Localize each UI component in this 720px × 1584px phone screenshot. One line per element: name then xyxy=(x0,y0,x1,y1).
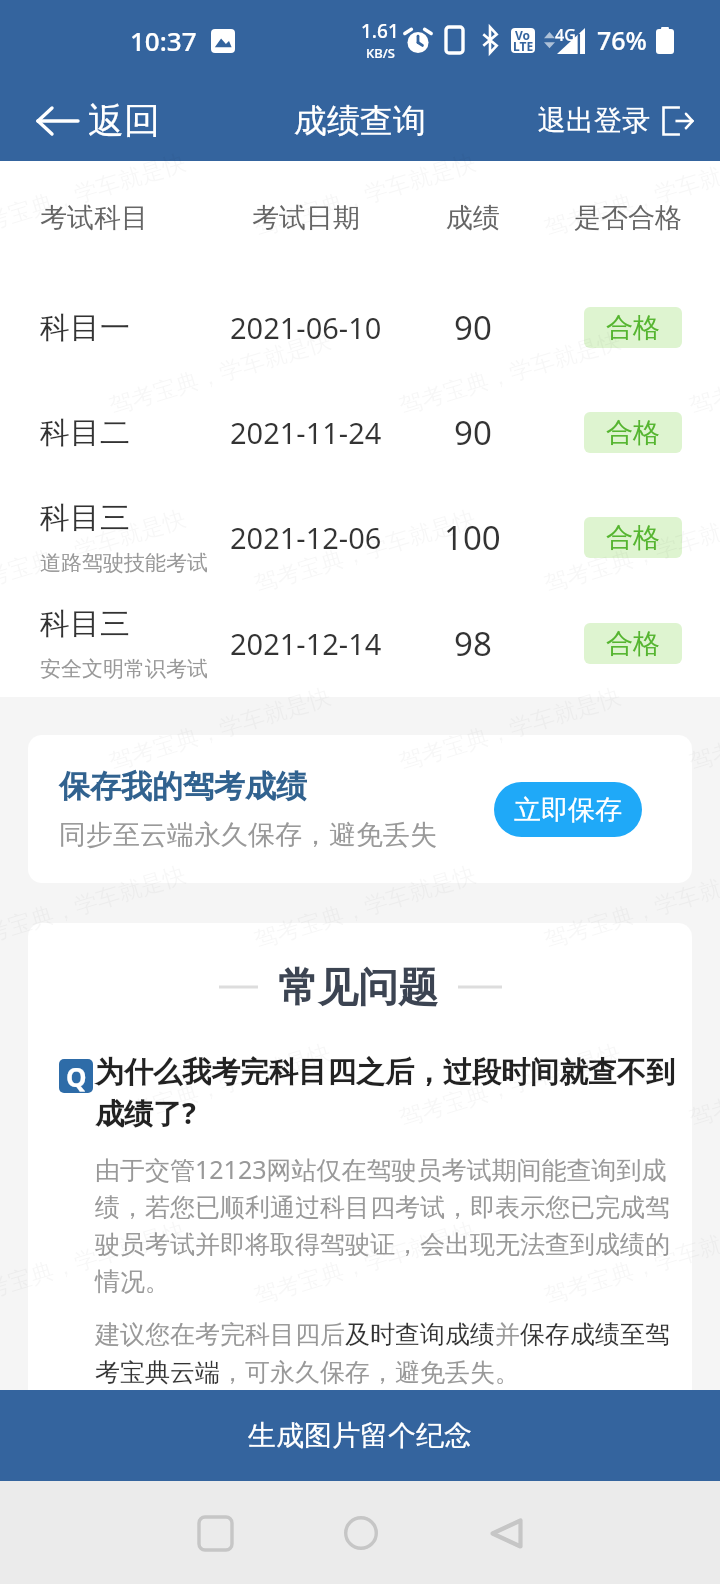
staticText: 合格 xyxy=(606,311,660,345)
button[interactable]: 科目二 xyxy=(0,380,720,485)
staticText: 合格 xyxy=(606,416,660,450)
staticText: 保存我的驾考成绩 xyxy=(59,767,307,806)
staticText: 驾考宝典，学车就是快 xyxy=(251,860,479,955)
staticText: 90 xyxy=(454,410,492,455)
staticText: 驾考宝典，学车就是快 xyxy=(0,1216,189,1311)
staticText: 驾考宝典，学车就是快 xyxy=(0,148,189,243)
staticText: 驾考宝典，学车就是快 xyxy=(0,860,189,955)
staticText: 驾考宝典，学车就是快 xyxy=(251,148,479,243)
staticText: 退出登录 xyxy=(538,103,650,138)
staticText: 1.61 xyxy=(361,18,399,44)
button[interactable]: 科目三 xyxy=(0,590,720,697)
staticText: 成绩查询 xyxy=(294,100,426,142)
staticText: 驾考宝典，学车就是快 xyxy=(396,682,624,777)
staticText: 驾考宝典，学车就是快 xyxy=(541,148,720,243)
staticText: 98 xyxy=(454,621,492,666)
staticText: 驾考宝典，学车就是快 xyxy=(541,860,720,955)
button[interactable]: 返回 xyxy=(0,86,176,155)
staticText: LTE xyxy=(513,38,534,53)
button[interactable]: 退出登录 xyxy=(522,91,720,150)
staticText: 建议您在考完科目四后及时查询成绩并保存成绩至驾考宝典云端，可永久保存，避免丢失。 xyxy=(95,1319,677,1388)
staticText: 安全文明常识考试 xyxy=(40,656,208,682)
staticText: 2021-06-10 xyxy=(230,308,382,347)
staticText: 2021-12-14 xyxy=(230,624,382,663)
staticText: 驾考宝典，学车就是快 xyxy=(396,1038,624,1133)
staticText: 90 xyxy=(454,305,492,350)
button[interactable]: 科目一 xyxy=(0,275,720,380)
staticText: 为什么我考完科目四之后，过段时间就查不到成绩了? xyxy=(95,1054,677,1133)
staticText: 成绩 xyxy=(446,201,500,235)
staticText: 驾考宝典，学车就是快 xyxy=(396,326,624,421)
staticText: 2021-11-24 xyxy=(230,413,382,452)
button[interactable]: Back xyxy=(476,1503,536,1563)
staticText: Vo xyxy=(515,28,531,43)
staticText: 驾考宝典，学车就是快 xyxy=(106,1038,334,1133)
staticText: 生成图片留个纪念 xyxy=(248,1418,472,1453)
staticText: KB/S xyxy=(366,44,395,62)
staticText: 驾考宝典，学车就是快 xyxy=(686,1038,720,1133)
staticText: Q xyxy=(66,1059,87,1093)
staticText: 考试日期 xyxy=(252,201,360,235)
staticText: 常见问题 xyxy=(278,962,438,1012)
button[interactable]: Recents xyxy=(185,1503,245,1563)
staticText: 4G xyxy=(555,24,576,46)
staticText: 立即保存 xyxy=(514,793,622,827)
button[interactable]: 立即保存 xyxy=(494,782,642,837)
staticText: 科目三 xyxy=(40,605,130,643)
staticText: 是否合格 xyxy=(574,201,682,235)
staticText: 76% xyxy=(597,23,647,57)
staticText: 驾考宝典，学车就是快 xyxy=(106,326,334,421)
staticText: 驾考宝典，学车就是快 xyxy=(541,1216,720,1311)
staticText: 科目三 xyxy=(40,499,130,537)
staticText: 合格 xyxy=(606,521,660,555)
staticText: 驾考宝典，学车就是快 xyxy=(0,504,189,599)
staticText: 由于交管12123网站仅在驾驶员考试期间能查询到成绩，若您已顺利通过科目四考试，… xyxy=(95,1152,677,1297)
staticText: 科目一 xyxy=(40,309,130,347)
staticText: 2021-12-06 xyxy=(230,518,382,557)
button[interactable]: Home xyxy=(331,1503,391,1563)
staticText: 10:37 xyxy=(130,23,197,58)
staticText: 驾考宝典，学车就是快 xyxy=(251,1216,479,1311)
button[interactable]: 生成图片留个纪念 xyxy=(0,1390,720,1481)
button[interactable]: 科目三 xyxy=(0,485,720,590)
staticText: 驾考宝典，学车就是快 xyxy=(686,682,720,777)
staticText: 同步至云端永久保存，避免丢失 xyxy=(59,818,437,852)
staticText: 科目二 xyxy=(40,414,130,452)
staticText: 100 xyxy=(444,515,501,560)
staticText: 合格 xyxy=(606,627,660,661)
staticText: 驾考宝典，学车就是快 xyxy=(106,682,334,777)
staticText: 考试科目 xyxy=(40,201,148,235)
staticText: 驾考宝典，学车就是快 xyxy=(541,504,720,599)
staticText: 返回 xyxy=(88,98,160,143)
staticText: 道路驾驶技能考试 xyxy=(40,550,208,576)
staticText: 驾考宝典，学车就是快 xyxy=(251,504,479,599)
